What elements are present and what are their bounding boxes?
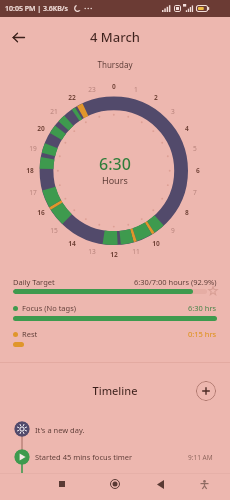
staticText: 10 xyxy=(152,239,160,248)
staticText: 15 xyxy=(50,226,58,235)
staticText: 4 March xyxy=(90,28,140,46)
staticText: 9 xyxy=(171,226,175,235)
button[interactable]: New day xyxy=(14,421,30,437)
staticText: 14 xyxy=(68,239,76,248)
staticText: Started 45 mins focus timer xyxy=(35,452,133,462)
staticText: 6:30 hrs xyxy=(188,303,217,313)
staticText: 0 xyxy=(112,82,116,91)
staticText: It's a new day. xyxy=(35,425,85,435)
staticText: Daily Target xyxy=(13,277,55,287)
staticText: 18 xyxy=(26,166,34,175)
staticText: 20 xyxy=(37,124,45,133)
staticText: 13 xyxy=(88,247,96,256)
button[interactable]: Focus timer xyxy=(14,449,30,465)
staticText: 8 xyxy=(185,208,189,217)
staticText: Thursday xyxy=(0,59,230,70)
staticText: Focus (No tags) xyxy=(22,303,77,313)
staticText: 3 xyxy=(171,107,175,116)
staticText: 6 xyxy=(196,166,200,175)
staticText: 5 xyxy=(193,144,197,153)
staticText: 23 xyxy=(88,85,96,94)
staticText: 9:11 AM xyxy=(188,453,213,462)
button[interactable]: Back xyxy=(6,25,30,49)
button[interactable]: Recents xyxy=(50,472,74,496)
button[interactable]: Back xyxy=(148,472,172,496)
staticText: 2 xyxy=(154,93,158,102)
staticText: 12 xyxy=(110,250,118,259)
staticText: 4 xyxy=(185,124,189,133)
button[interactable]: Home xyxy=(103,472,127,496)
staticText: 19 xyxy=(29,144,37,153)
staticText: 11 xyxy=(132,247,140,256)
button[interactable]: Add timeline entry xyxy=(196,381,216,401)
staticText: 17 xyxy=(29,188,37,197)
staticText: Timeline xyxy=(0,383,230,398)
staticText: 7 xyxy=(193,188,197,197)
staticText: 16 xyxy=(37,208,45,217)
staticText: 1 xyxy=(134,85,138,94)
staticText: 6:30/7:00 hours (92.9%) xyxy=(134,277,217,287)
staticText: 22 xyxy=(68,93,76,102)
staticText: 6:30 xyxy=(99,153,131,173)
staticText: Rest xyxy=(22,329,38,339)
button[interactable]: Accessibility xyxy=(193,473,215,495)
staticText: 0:15 hrs xyxy=(188,329,217,339)
staticText: 21 xyxy=(50,107,58,116)
staticText: Hours xyxy=(102,174,128,186)
staticText: 10:05 PM | 3.6KB/s xyxy=(5,4,68,14)
